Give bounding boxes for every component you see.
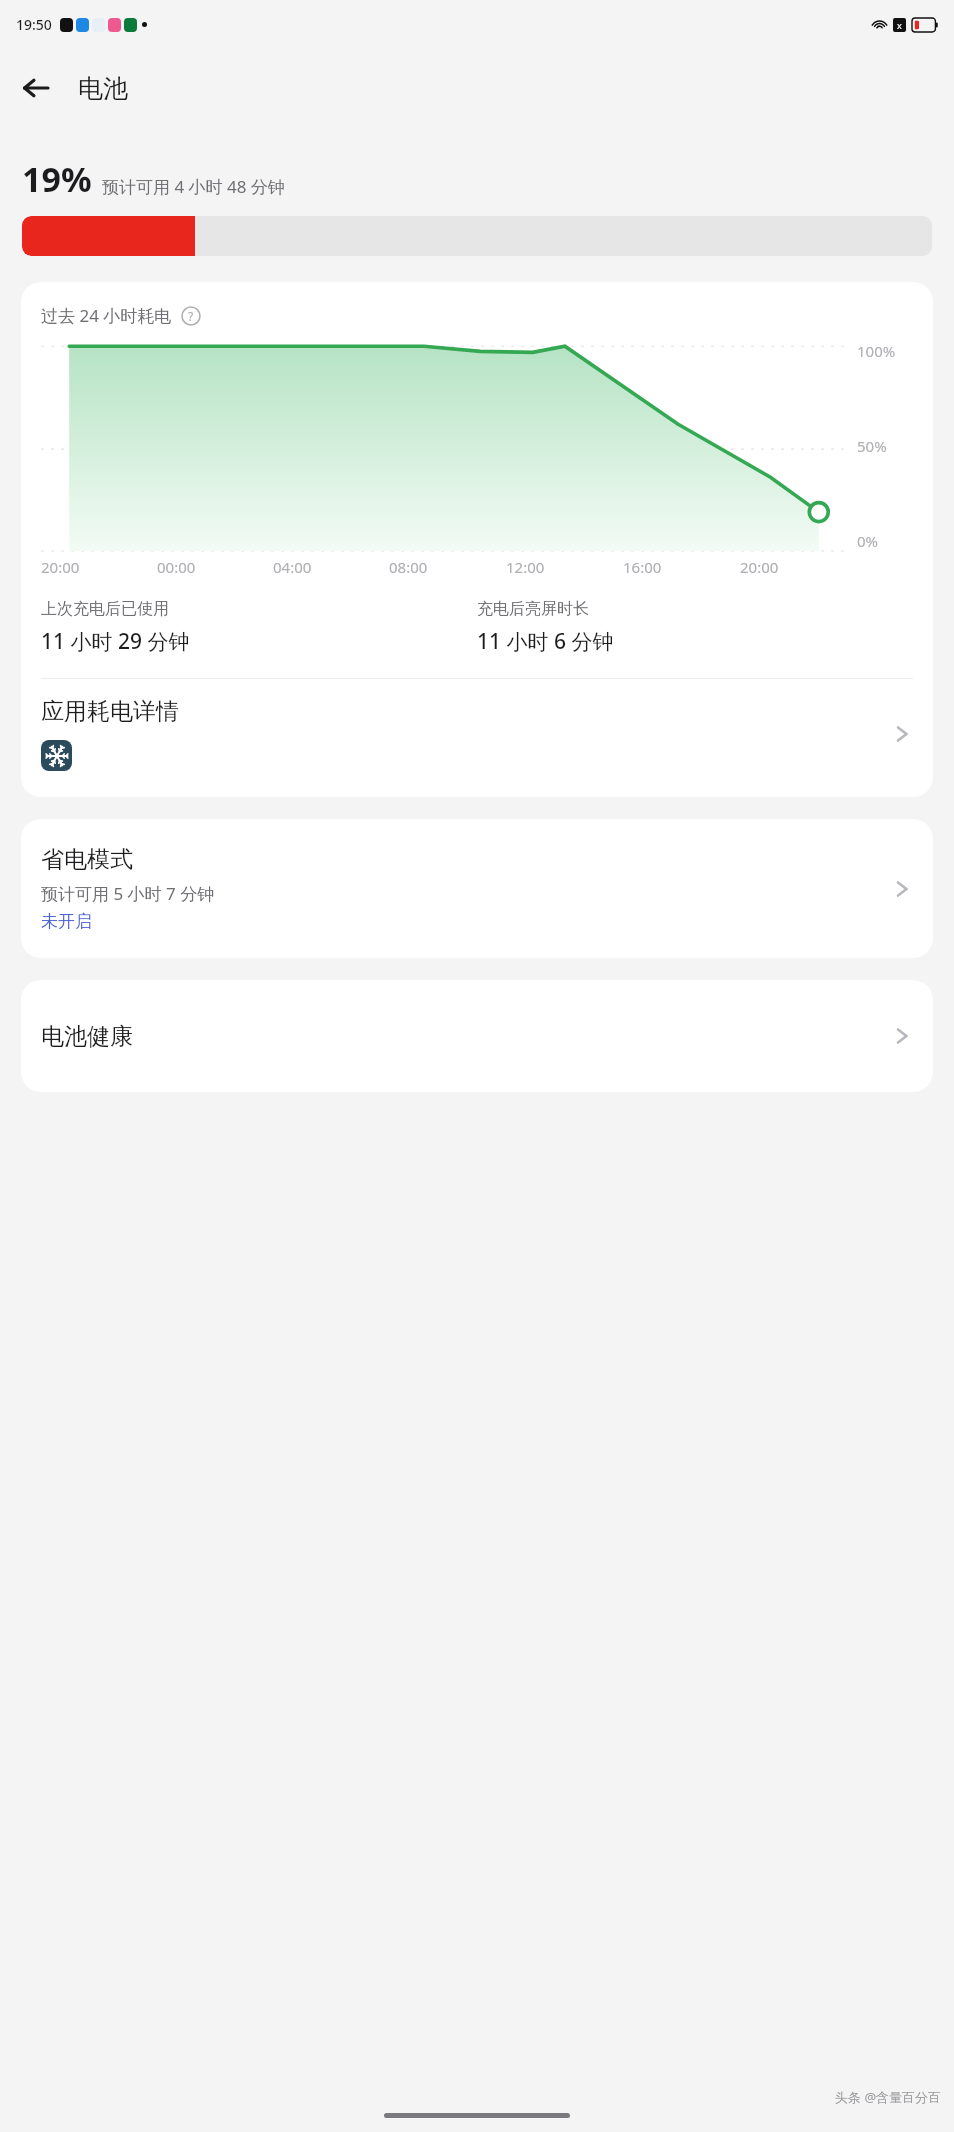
button[interactable]: Help bbox=[180, 305, 202, 327]
staticText: 20:00 bbox=[740, 557, 857, 577]
staticText: 100% bbox=[857, 341, 896, 361]
staticText: 预计可用 4 小时 48 分钟 bbox=[102, 175, 285, 198]
staticText: 省电模式 bbox=[41, 845, 133, 874]
staticText: 预计可用 5 小时 7 分钟 bbox=[41, 882, 215, 905]
staticText: 充电后亮屏时长 bbox=[477, 599, 589, 619]
staticText: 50% bbox=[857, 436, 887, 456]
button[interactable]: 应用耗电详情 bbox=[41, 679, 913, 787]
staticText: 20:00 bbox=[41, 557, 157, 577]
staticText: 上次充电后已使用 bbox=[41, 599, 169, 619]
staticText: 电池 bbox=[78, 73, 128, 104]
staticText: 04:00 bbox=[273, 557, 389, 577]
staticText: 过去 24 小时耗电 bbox=[41, 304, 172, 327]
staticText: 应用耗电详情 bbox=[41, 697, 179, 726]
staticText: 16:00 bbox=[623, 557, 740, 577]
staticText: 19:50 bbox=[16, 15, 52, 34]
staticText: 电池健康 bbox=[41, 1022, 891, 1051]
button[interactable]: Back bbox=[8, 60, 64, 116]
staticText: 19% bbox=[22, 156, 92, 202]
staticText: 11 小时 29 分钟 bbox=[41, 627, 190, 656]
staticText: 11 小时 6 分钟 bbox=[477, 627, 614, 656]
button[interactable]: 电池健康 bbox=[21, 980, 933, 1092]
button[interactable]: 省电模式 bbox=[21, 819, 933, 958]
staticText: 未开启 bbox=[41, 911, 92, 932]
staticText: x bbox=[897, 19, 902, 31]
staticText: 0% bbox=[857, 531, 879, 551]
staticText: ? bbox=[188, 308, 194, 324]
staticText: 12:00 bbox=[506, 557, 623, 577]
staticText: 08:00 bbox=[389, 557, 506, 577]
staticText: 头条 @含量百分百 bbox=[835, 2088, 942, 2106]
staticText: 00:00 bbox=[157, 557, 273, 577]
